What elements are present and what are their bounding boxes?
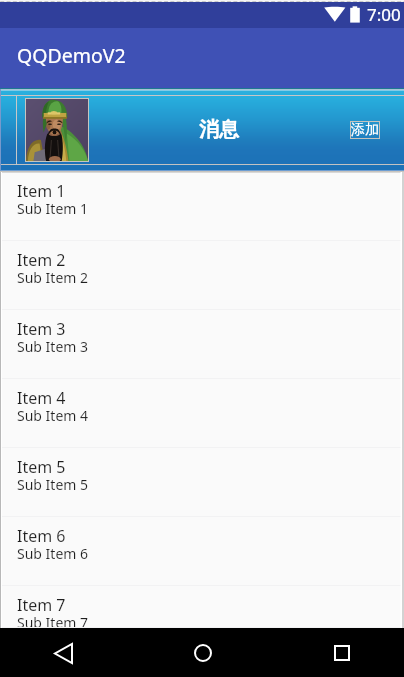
button[interactable]: Item 6 bbox=[0, 517, 404, 586]
staticText: Item 2 bbox=[17, 249, 66, 271]
button[interactable]: Home bbox=[179, 629, 227, 677]
staticText: Sub Item 5 bbox=[17, 475, 89, 494]
button[interactable]: Item 2 bbox=[0, 241, 404, 310]
staticText: Item 6 bbox=[17, 525, 66, 547]
button[interactable]: Item 5 bbox=[0, 448, 404, 517]
button[interactable]: Item 7 bbox=[0, 586, 404, 628]
staticText: Sub Item 2 bbox=[17, 268, 89, 287]
button[interactable]: 添加 bbox=[350, 121, 380, 139]
staticText: Item 3 bbox=[17, 318, 66, 340]
staticText: Item 1 bbox=[17, 180, 66, 202]
button[interactable]: Recent apps bbox=[318, 629, 366, 677]
button[interactable]: Back bbox=[39, 629, 87, 677]
staticText: Item 4 bbox=[17, 387, 66, 409]
staticText: Sub Item 3 bbox=[17, 337, 89, 356]
staticText: Item 7 bbox=[17, 594, 66, 616]
button[interactable]: Item 4 bbox=[0, 379, 404, 448]
staticText: Sub Item 7 bbox=[17, 613, 89, 632]
staticText: Sub Item 6 bbox=[17, 544, 89, 563]
staticText: Item 5 bbox=[17, 456, 66, 478]
button[interactable]: Item 1 bbox=[0, 172, 404, 241]
staticText: QQDemoV2 bbox=[17, 42, 126, 69]
button[interactable]: Avatar bbox=[25, 98, 89, 162]
staticText: 7:00 bbox=[367, 3, 401, 26]
staticText: 添加 bbox=[351, 121, 379, 139]
staticText: Sub Item 1 bbox=[17, 199, 89, 218]
staticText: 消息 bbox=[199, 117, 239, 142]
staticText: Sub Item 4 bbox=[17, 406, 89, 425]
button[interactable]: Item 3 bbox=[0, 310, 404, 379]
